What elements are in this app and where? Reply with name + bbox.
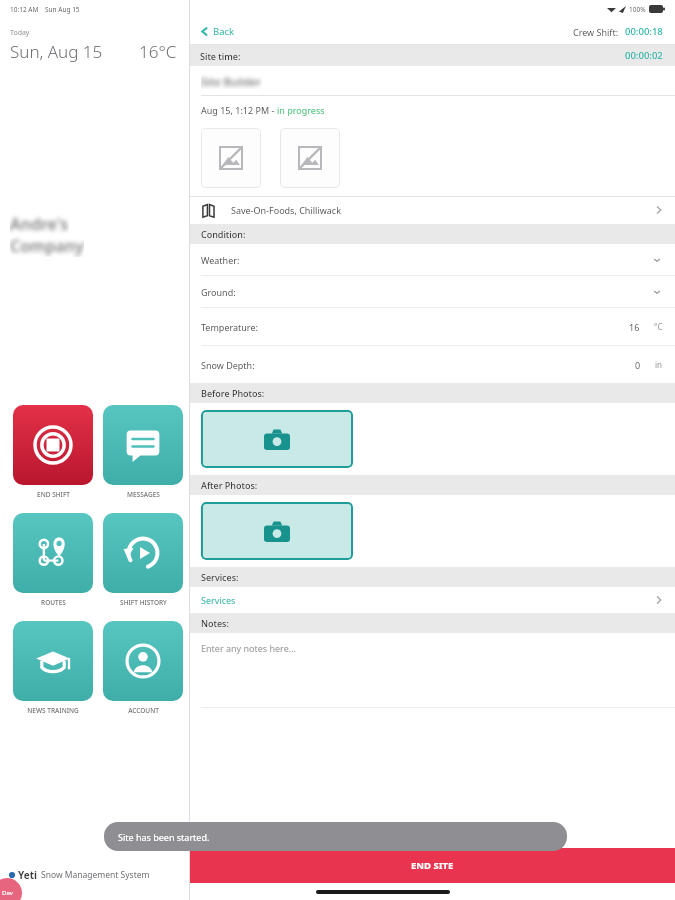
button[interactable]: MESSAGES	[103, 405, 183, 499]
button[interactable]: ACCOUNT	[103, 621, 183, 715]
button[interactable]: Weather:	[190, 244, 675, 275]
staticText: 00:00:18	[625, 25, 663, 38]
button[interactable]: Photo placeholder	[201, 128, 261, 188]
staticText: in	[655, 359, 663, 370]
staticText: ROUTES	[41, 598, 66, 607]
staticText: 00:00:02	[625, 49, 663, 62]
staticText: 0	[635, 359, 641, 371]
staticText: ACCOUNT	[128, 706, 159, 715]
staticText: Yeti	[18, 868, 38, 882]
staticText: NEWS TRAINING	[27, 706, 79, 715]
staticText: Snow Management System	[41, 869, 150, 881]
staticText: Today	[10, 28, 30, 38]
button[interactable]: Photo placeholder	[280, 128, 340, 188]
staticText: 10:12 AM	[10, 5, 39, 14]
staticText: Services:	[201, 571, 239, 583]
staticText: Company	[10, 235, 84, 257]
button[interactable]: Take photo	[201, 502, 353, 560]
staticText: MESSAGES	[127, 490, 160, 499]
staticText: Site time:	[200, 50, 241, 62]
staticText: END SHIFT	[37, 490, 70, 499]
staticText: Save-On-Foods, Chilliwack	[231, 204, 341, 216]
button[interactable]: Take photo	[201, 410, 353, 468]
staticText: 100%	[629, 5, 646, 14]
staticText: Andre's	[10, 213, 69, 235]
staticText: Enter any notes here...	[201, 642, 296, 654]
staticText: Condition:	[201, 228, 246, 240]
staticText: Weather:	[201, 254, 240, 266]
staticText: Ground:	[201, 286, 236, 298]
staticText: Before Photos:	[201, 387, 265, 399]
staticText: Sun, Aug 15	[10, 40, 103, 63]
staticText: in progress	[277, 104, 325, 116]
staticText: SHIFT HISTORY	[120, 598, 167, 607]
staticText: Back	[213, 25, 235, 38]
button[interactable]: Temperature:	[190, 308, 675, 345]
staticText: Site Builder	[201, 74, 262, 89]
button[interactable]: Services	[190, 587, 675, 613]
staticText: Site has been started.	[118, 831, 210, 843]
button[interactable]: END SHIFT	[13, 405, 93, 499]
staticText: °C	[654, 321, 663, 332]
staticText: Snow Depth:	[201, 359, 255, 371]
staticText: After Photos:	[201, 479, 258, 491]
button[interactable]: ROUTES	[13, 513, 93, 607]
staticText: Dev	[2, 889, 13, 897]
staticText: Aug 15, 1:12 PM -	[201, 104, 277, 116]
button[interactable]: END SITE	[190, 848, 675, 883]
staticText: Services	[201, 594, 236, 606]
button[interactable]: Enter any notes here...	[190, 633, 675, 663]
staticText: Crew Shift:	[573, 26, 619, 38]
button[interactable]: SHIFT HISTORY	[103, 513, 183, 607]
button[interactable]: NEWS TRAINING	[13, 621, 93, 715]
staticText: END SITE	[411, 859, 454, 872]
button[interactable]: Back	[200, 25, 241, 38]
staticText: 16	[629, 321, 640, 333]
button[interactable]: Save-On-Foods, Chilliwack	[190, 196, 675, 224]
button[interactable]: Snow Depth:	[190, 346, 675, 383]
staticText: Sun Aug 15	[45, 5, 80, 14]
staticText: Notes:	[201, 617, 229, 629]
staticText: 16°C	[139, 40, 177, 63]
button[interactable]: Ground:	[190, 276, 675, 307]
staticText: Temperature:	[201, 321, 258, 333]
